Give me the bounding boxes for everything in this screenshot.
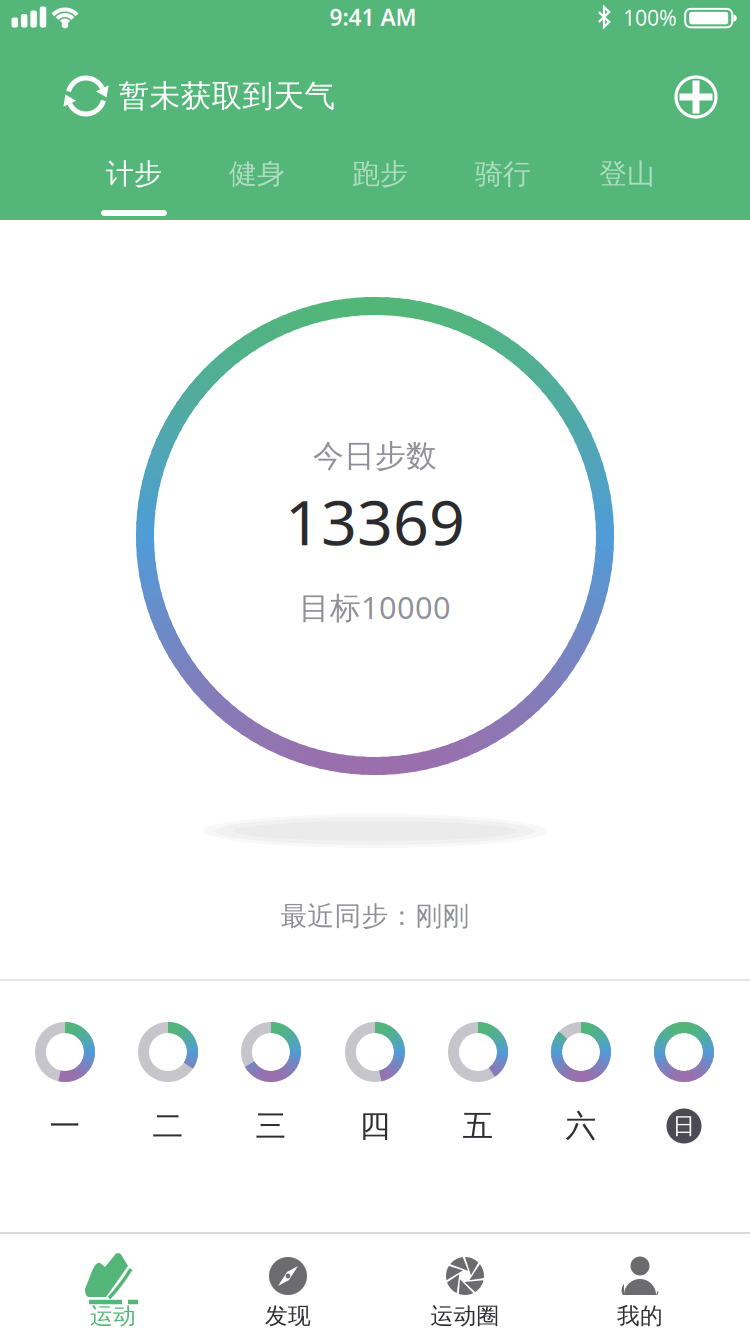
staticText: 骑行 bbox=[475, 157, 531, 191]
staticText: 运动圈 bbox=[430, 1302, 499, 1330]
staticText: 跑步 bbox=[352, 157, 408, 191]
button[interactable]: 登山 bbox=[572, 146, 682, 202]
button[interactable]: 星期六 bbox=[536, 1021, 626, 1151]
staticText: 100% bbox=[623, 3, 677, 32]
staticText: 五 bbox=[462, 1107, 493, 1145]
staticText: 运动 bbox=[90, 1302, 136, 1330]
staticText: 二 bbox=[152, 1107, 183, 1145]
staticText: 健身 bbox=[229, 157, 285, 191]
button[interactable]: 星期一 bbox=[20, 1021, 110, 1151]
staticText: 一 bbox=[49, 1107, 80, 1145]
staticText: 计步 bbox=[106, 157, 162, 191]
button[interactable]: 跑步 bbox=[325, 146, 435, 202]
staticText: 三 bbox=[255, 1107, 286, 1145]
button[interactable]: 计步 bbox=[79, 146, 189, 202]
button[interactable]: 我的 bbox=[560, 1234, 720, 1334]
button[interactable]: 添加 bbox=[666, 67, 726, 127]
staticText: 目标10000 bbox=[299, 587, 451, 627]
staticText: 六 bbox=[565, 1107, 596, 1145]
staticText: 四 bbox=[359, 1107, 390, 1145]
button[interactable]: 刷新天气 bbox=[56, 66, 116, 126]
button[interactable]: 发现 bbox=[208, 1234, 368, 1334]
button[interactable]: 星期二 bbox=[123, 1021, 213, 1151]
button[interactable]: 健身 bbox=[202, 146, 312, 202]
button[interactable]: 星期四 bbox=[330, 1021, 420, 1151]
button[interactable]: 骑行 bbox=[448, 146, 558, 202]
button[interactable]: 星期日 bbox=[639, 1021, 729, 1151]
staticText: 我的 bbox=[617, 1302, 663, 1330]
staticText: 13369 bbox=[285, 479, 465, 563]
button[interactable]: 运动 bbox=[33, 1234, 193, 1334]
staticText: 今日步数 bbox=[313, 437, 437, 475]
staticText: 登山 bbox=[599, 157, 655, 191]
button[interactable]: 运动圈 bbox=[385, 1234, 545, 1334]
button[interactable]: 星期五 bbox=[433, 1021, 523, 1151]
staticText: 日 bbox=[672, 1112, 695, 1140]
staticText: 最近同步：刚刚 bbox=[280, 900, 469, 932]
staticText: 9:41 AM bbox=[329, 2, 416, 32]
button[interactable]: 星期三 bbox=[226, 1021, 316, 1151]
staticText: 暂未获取到天气 bbox=[118, 77, 335, 115]
staticText: 发现 bbox=[265, 1302, 311, 1330]
